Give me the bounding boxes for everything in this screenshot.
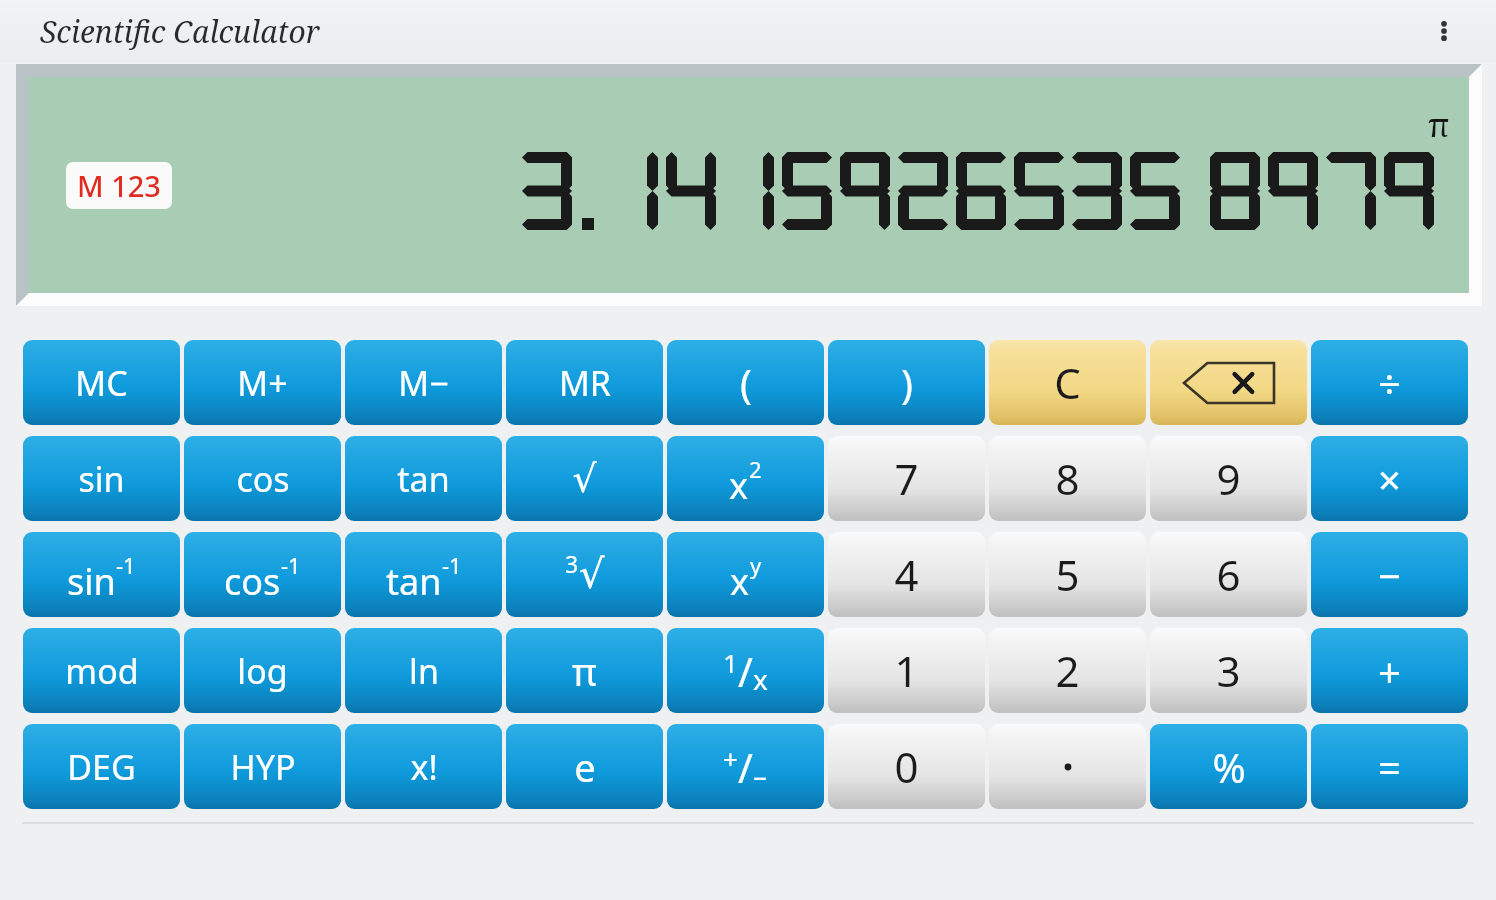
button[interactable]: − [1311,532,1468,617]
button[interactable]: 2 [989,628,1146,713]
staticText: 7 [894,450,919,507]
button[interactable]: DEG [23,724,180,809]
staticText: cos [236,456,290,502]
staticText: √ [579,551,605,598]
staticText: x [730,557,750,606]
button[interactable]: = [1311,724,1468,809]
button[interactable]: cos [184,436,341,521]
button[interactable]: + [1311,628,1468,713]
button[interactable]: HYP [184,724,341,809]
staticText: HYP [230,744,296,790]
button[interactable]: mod [23,628,180,713]
staticText: e [574,741,596,793]
button[interactable]: Plus minus [667,724,824,809]
staticText: π [1428,102,1450,147]
button[interactable]: x! [345,724,502,809]
staticText: ( [740,356,752,410]
staticText: M 123 [77,166,161,205]
staticText: = [1378,740,1401,794]
staticText: 4 [894,546,919,603]
staticText: / [738,740,753,794]
button[interactable]: 4 [828,532,985,617]
button[interactable]: π [506,628,663,713]
button[interactable]: ÷ [1311,340,1468,425]
staticText: – [753,756,768,794]
staticText: log [237,648,288,694]
staticText: MR [559,360,611,406]
staticText: DEG [67,744,136,790]
staticText: 8 [1055,450,1080,507]
button[interactable]: e [506,724,663,809]
staticText: × [1378,452,1401,506]
staticText: 2 [749,454,762,484]
staticText: ln [409,648,439,694]
button[interactable]: log [184,628,341,713]
button[interactable]: ) [828,340,985,425]
staticText: x! [410,744,438,790]
button[interactable]: M+ [184,340,341,425]
staticText: M− [398,360,449,406]
staticText: x [729,461,749,510]
staticText: cos [224,557,281,606]
button[interactable]: ( [667,340,824,425]
button[interactable]: 1 [828,628,985,713]
button[interactable]: ln [345,628,502,713]
staticText: C [1054,354,1081,411]
staticText: -1 [116,550,136,580]
button[interactable]: % [1150,724,1307,809]
button[interactable]: 0 [828,724,985,809]
button[interactable]: Cube root [506,532,663,617]
staticText: − [1378,548,1401,602]
staticText: / [738,644,753,698]
button[interactable]: 5 [989,532,1146,617]
button[interactable]: sin [23,532,180,617]
staticText: + [723,741,738,776]
staticText: π [572,645,597,697]
button[interactable]: M− [345,340,502,425]
staticText: x [753,660,768,698]
button[interactable]: C [989,340,1146,425]
button[interactable]: Reciprocal [667,628,824,713]
button[interactable]: x [667,532,824,617]
staticText: -1 [281,550,301,580]
button[interactable]: cos [184,532,341,617]
staticText: 9 [1216,450,1241,507]
staticText: mod [65,648,139,694]
staticText: ) [901,356,913,410]
button[interactable]: 8 [989,436,1146,521]
staticText: 6 [1216,546,1241,603]
button[interactable]: 3 [1150,628,1307,713]
button[interactable]: 7 [828,436,985,521]
staticText: + [1378,644,1401,698]
staticText: ÷ [1378,356,1401,410]
staticText: % [1212,740,1246,794]
button[interactable]: More options [1422,9,1466,53]
button[interactable]: × [1311,436,1468,521]
staticText: Scientific Calculator [40,11,320,52]
staticText: MC [75,360,128,406]
button[interactable]: sin [23,436,180,521]
staticText: sin [78,456,125,502]
staticText: tan [397,456,450,502]
staticText: 1 [894,642,919,699]
staticText: 1 [723,645,738,680]
staticText: 3 [1216,642,1241,699]
staticText: -1 [442,550,462,580]
staticText: √ [572,457,597,501]
staticText: tan [386,557,442,606]
button[interactable]: tan [345,436,502,521]
button[interactable]: Backspace [1150,340,1307,425]
button[interactable]: √ [506,436,663,521]
button[interactable]: MC [23,340,180,425]
button[interactable] [989,724,1146,809]
staticText: M+ [237,360,288,406]
button[interactable]: x [667,436,824,521]
staticText: y [750,550,762,580]
button[interactable]: tan [345,532,502,617]
button[interactable]: 9 [1150,436,1307,521]
button[interactable]: 6 [1150,532,1307,617]
staticText: 0 [894,738,919,795]
button[interactable]: MR [506,340,663,425]
staticText: sin [67,557,116,606]
staticText: 3 [565,548,579,579]
